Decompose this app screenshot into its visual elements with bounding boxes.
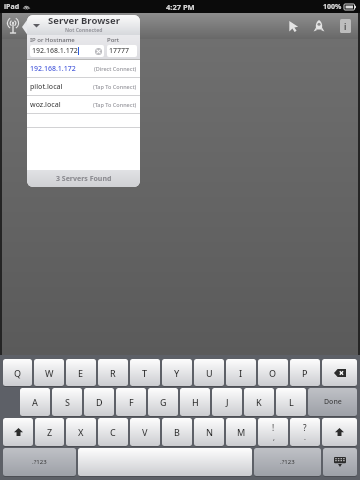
button[interactable]: E — [66, 359, 96, 386]
button[interactable]: N — [194, 418, 224, 446]
staticText: V — [142, 426, 148, 438]
staticText: Y — [174, 367, 180, 379]
staticText: i — [344, 21, 347, 32]
staticText: R — [110, 367, 116, 379]
staticText: pilot.local — [30, 82, 63, 92]
staticText: , — [273, 433, 275, 443]
staticText: Port — [107, 36, 137, 44]
button[interactable]: C — [98, 418, 128, 446]
button[interactable]: K — [244, 388, 274, 416]
staticText: (Tap To Connect) — [93, 101, 137, 108]
button[interactable]: Menu — [30, 19, 42, 31]
button[interactable]: H — [180, 388, 210, 416]
other: Clear text — [95, 48, 102, 55]
staticText: A — [32, 396, 38, 408]
staticText: N — [206, 426, 213, 438]
staticText: X — [78, 426, 84, 438]
button[interactable]: V — [130, 418, 160, 446]
button[interactable]: Shift — [3, 418, 33, 446]
staticText: Not Connected — [65, 27, 103, 34]
staticText: woz.local — [30, 100, 61, 110]
staticText: (Direct Connect) — [94, 65, 137, 72]
button[interactable]: W — [34, 359, 64, 386]
staticText: B — [174, 426, 180, 438]
button[interactable]: .?123 — [254, 448, 321, 476]
button[interactable]: L — [276, 388, 306, 416]
staticText: O — [269, 367, 277, 379]
button[interactable]: A — [20, 388, 50, 416]
staticText: E — [78, 367, 84, 379]
button[interactable]: T — [130, 359, 160, 386]
staticText: F — [129, 396, 134, 408]
button[interactable]: Z — [35, 418, 64, 446]
staticText: .?123 — [32, 458, 47, 466]
button[interactable]: P — [290, 359, 320, 386]
staticText: W — [45, 367, 54, 379]
button[interactable]: .?123 — [3, 448, 76, 476]
button[interactable]: X — [66, 418, 96, 446]
staticText: D — [96, 396, 103, 408]
staticText: L — [289, 396, 294, 408]
button[interactable]: M — [226, 418, 256, 446]
staticText: . — [304, 433, 306, 443]
staticText: M — [237, 426, 246, 438]
staticText: 192.168.1.172 — [30, 64, 76, 74]
button[interactable]: U — [194, 359, 224, 386]
button[interactable]: Hide keyboard — [323, 448, 357, 476]
staticText: C — [110, 426, 116, 438]
button[interactable]: 17777 — [107, 45, 137, 57]
staticText: K — [256, 396, 262, 408]
button[interactable]: S — [52, 388, 82, 416]
staticText: (Tap To Connect) — [93, 83, 137, 90]
staticText: P — [302, 367, 308, 379]
staticText: G — [160, 396, 167, 408]
staticText: U — [206, 367, 213, 379]
button[interactable]: 192.168.1.172 — [30, 45, 104, 57]
button[interactable]: J — [212, 388, 242, 416]
staticText: 4:27 PM — [166, 2, 195, 12]
staticText: I — [239, 367, 243, 379]
button[interactable]: ? . — [290, 418, 320, 446]
button[interactable]: Y — [162, 359, 192, 386]
button[interactable]: G — [148, 388, 178, 416]
button[interactable]: O — [258, 359, 288, 386]
button[interactable]: Backspace — [322, 359, 357, 386]
staticText: 192.168.1.172 — [32, 46, 78, 56]
staticText: iPad — [4, 2, 20, 12]
staticText: 17777 — [109, 46, 130, 56]
button[interactable]: Q — [3, 359, 32, 386]
button[interactable]: Pointer — [280, 13, 306, 39]
button[interactable]: woz.local — [27, 96, 140, 113]
staticText: J — [226, 396, 229, 408]
button[interactable]: D — [84, 388, 114, 416]
staticText: .?123 — [280, 458, 295, 466]
button[interactable]: Done — [308, 388, 357, 416]
staticText: Z — [47, 426, 53, 438]
button[interactable]: F — [116, 388, 146, 416]
button[interactable]: Shift — [322, 418, 357, 446]
button[interactable]: Space — [78, 448, 252, 476]
button[interactable]: Launch — [306, 13, 332, 39]
staticText: Q — [14, 367, 22, 379]
button[interactable]: ! , — [258, 418, 288, 446]
button[interactable]: Server — [3, 16, 23, 36]
staticText: 100% — [323, 2, 342, 12]
staticText: Server Browser — [48, 15, 120, 27]
button[interactable]: B — [162, 418, 192, 446]
staticText: IP or Hostname — [30, 36, 104, 44]
staticText: Done — [324, 397, 342, 407]
staticText: T — [142, 367, 148, 379]
staticText: S — [65, 396, 70, 408]
button[interactable]: 192.168.1.172 — [27, 60, 140, 77]
staticText: H — [192, 396, 199, 408]
button[interactable]: R — [98, 359, 128, 386]
staticText: ! — [272, 422, 275, 433]
staticText: ? — [303, 422, 307, 433]
button[interactable]: pilot.local — [27, 78, 140, 95]
staticText: 3 Servers Found — [56, 174, 112, 184]
button[interactable]: Info — [332, 13, 358, 39]
button[interactable]: I — [226, 359, 256, 386]
